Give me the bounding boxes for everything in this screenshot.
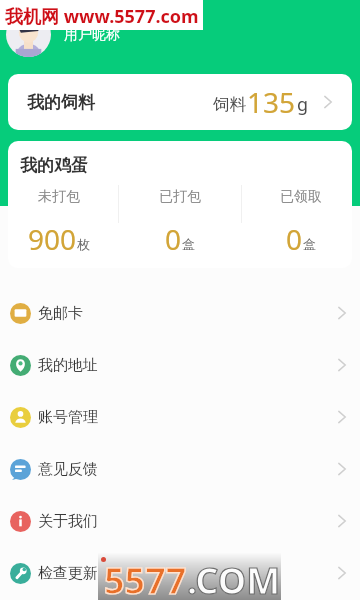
other: 我的地址 [10, 355, 31, 376]
other: 检查更新 [10, 563, 31, 584]
button[interactable]: 我的饲料 [8, 74, 352, 130]
staticText: .COM [187, 556, 281, 600]
staticText: 已打包 [159, 188, 201, 206]
other: 意见反馈 [10, 459, 31, 480]
staticText: 我的地址 [38, 356, 98, 375]
button[interactable]: 头像 [6, 12, 120, 57]
other: 关于我们 [10, 511, 31, 532]
staticText: 未打包 [38, 188, 80, 206]
staticText: 0 [286, 220, 303, 258]
staticText: 0 [165, 220, 182, 258]
button[interactable]: 关于我们 [0, 495, 360, 547]
staticText: g [297, 92, 309, 117]
staticText: 检查更新 [38, 564, 98, 583]
staticText: 盒 [303, 236, 316, 252]
staticText: 饲料 [213, 94, 246, 115]
button[interactable]: 检查更新 [0, 547, 360, 599]
staticText: 900 [28, 220, 77, 258]
other: 头像 [6, 12, 51, 57]
staticText: 盒 [182, 236, 195, 252]
staticText: 关于我们 [38, 512, 98, 531]
staticText: 免邮卡 [38, 304, 83, 323]
staticText: 枚 [77, 236, 90, 252]
staticText: 我机网 www.5577.com [5, 4, 199, 29]
button[interactable]: 免邮卡 [0, 287, 360, 339]
button[interactable]: 我的地址 [0, 339, 360, 391]
staticText: 我的饲料 [27, 92, 95, 113]
staticText: 用户昵称 [64, 26, 120, 44]
button[interactable]: 意见反馈 [0, 443, 360, 495]
other: 账号管理 [10, 407, 31, 428]
staticText: 已领取 [280, 188, 322, 206]
staticText: .COM [187, 556, 281, 600]
staticText: 账号管理 [38, 408, 98, 427]
staticText: 135 [247, 83, 296, 121]
staticText: 5577 [104, 556, 187, 600]
staticText: 我的鸡蛋 [20, 155, 88, 176]
staticText: 5577 [104, 556, 187, 600]
other: 免邮卡 [10, 303, 31, 324]
button[interactable]: 账号管理 [0, 391, 360, 443]
staticText: 意见反馈 [38, 460, 98, 479]
